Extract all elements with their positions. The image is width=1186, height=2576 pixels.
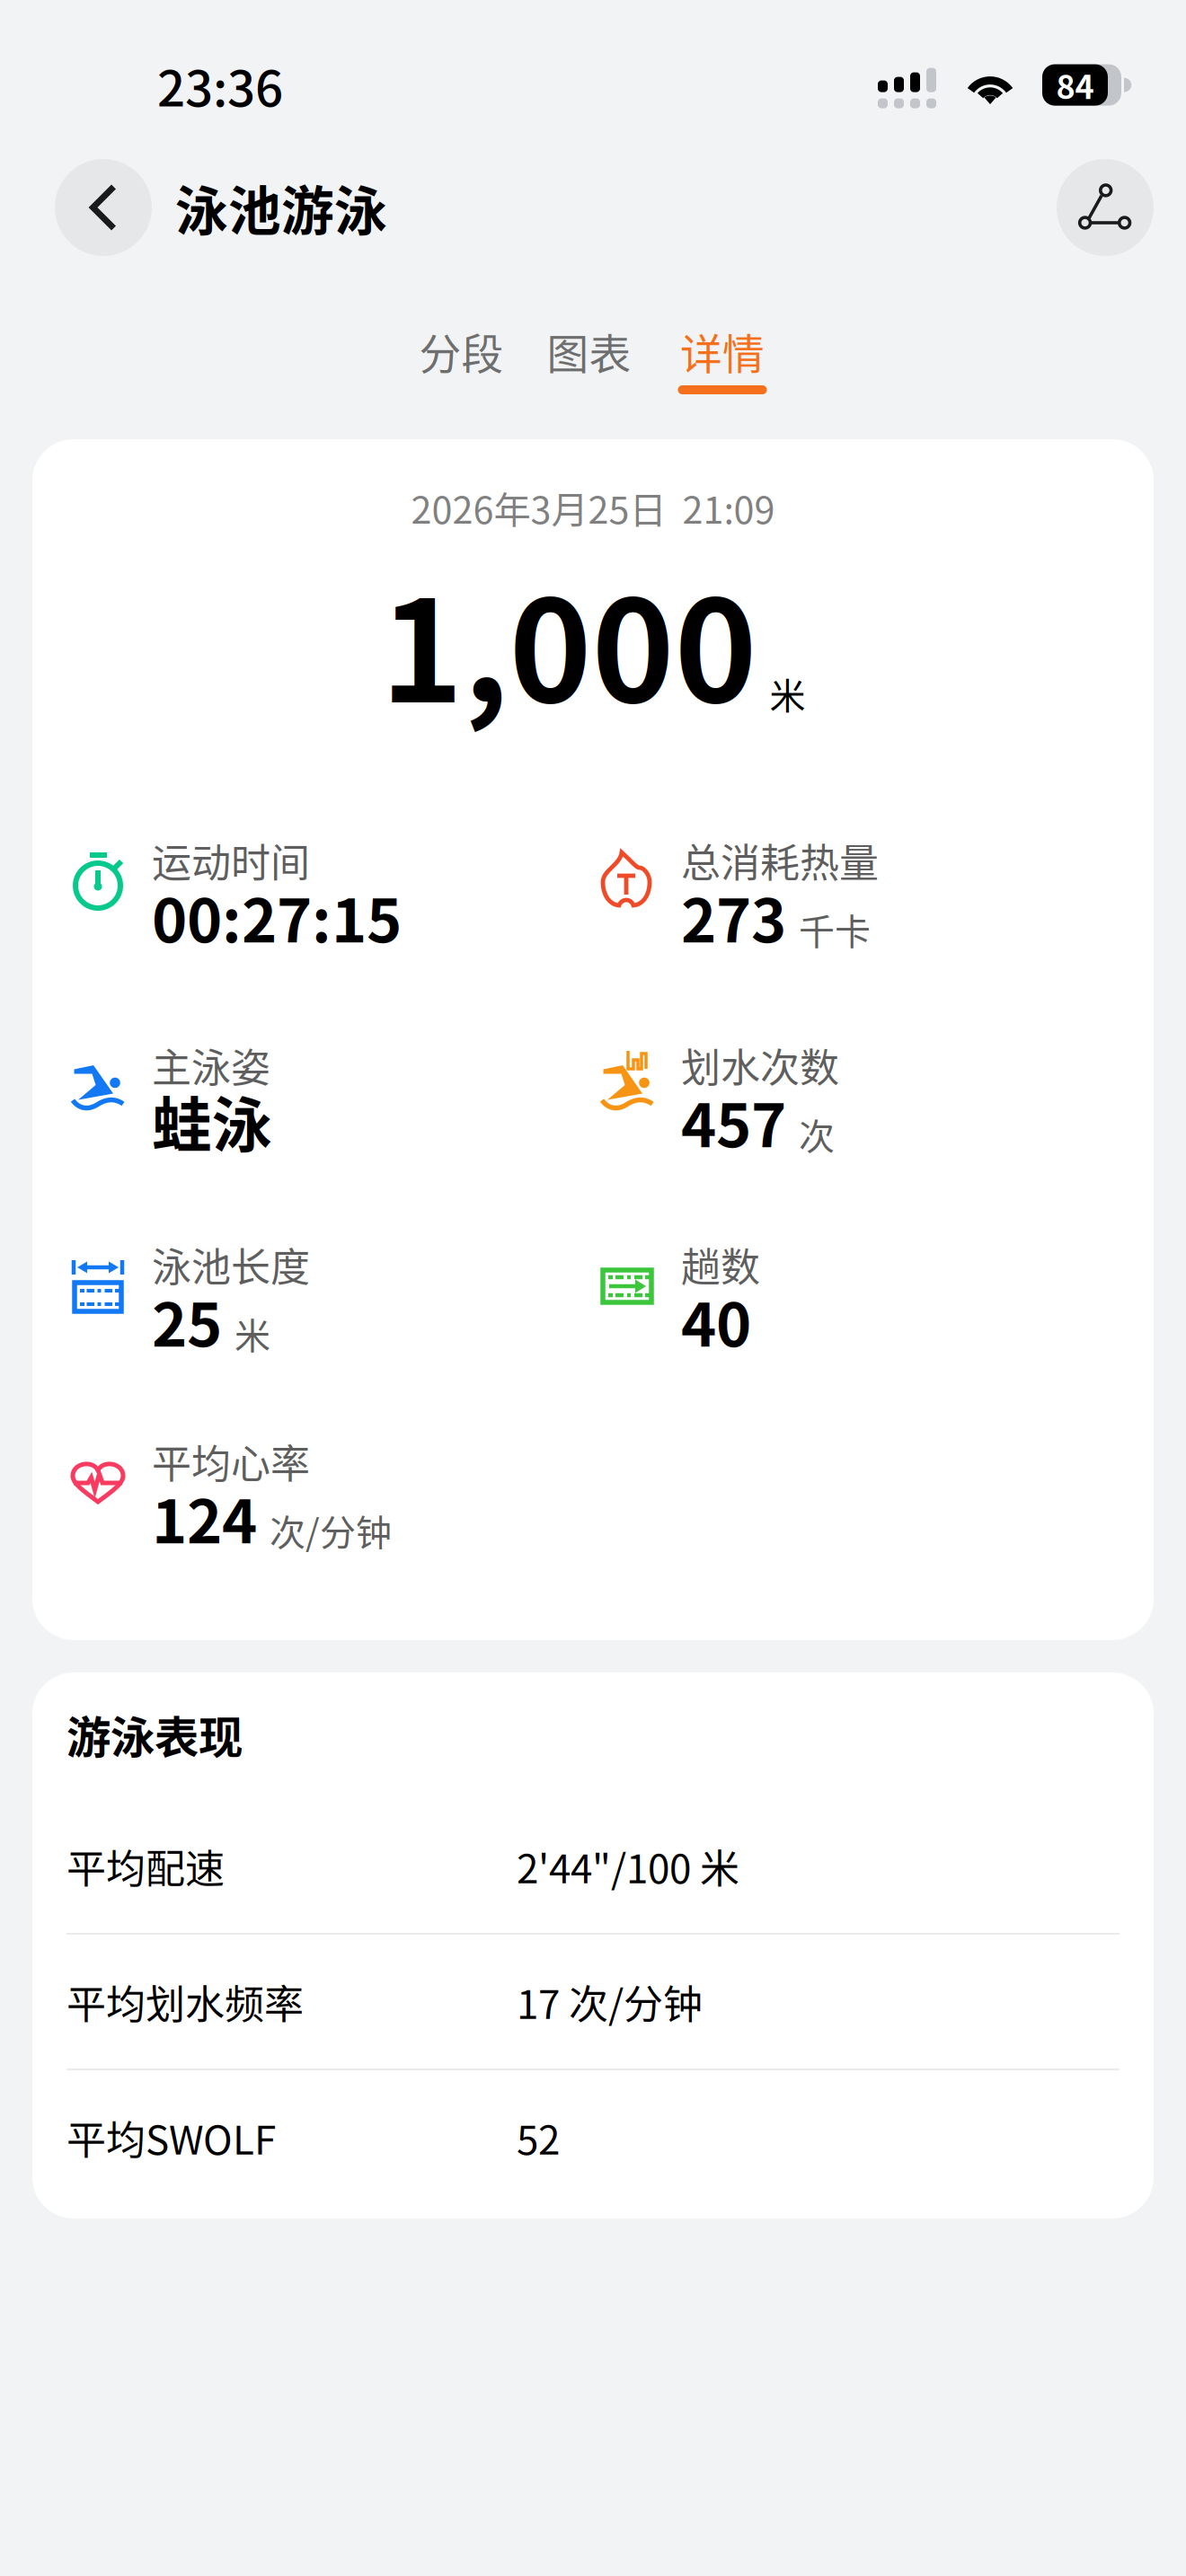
- staticText: 游泳表现: [66, 1702, 243, 1766]
- staticText: 蛙泳: [152, 1078, 272, 1164]
- staticText: 84: [1056, 62, 1094, 108]
- staticText: 平均心率: [152, 1433, 310, 1490]
- staticText: 米: [235, 1307, 270, 1359]
- staticText: 次/分钟: [270, 1504, 392, 1556]
- staticText: 泳池长度: [152, 1236, 310, 1293]
- staticText: 00:27:15: [152, 873, 402, 960]
- staticText: 趟数: [681, 1236, 760, 1293]
- staticText: 1,000: [381, 540, 757, 743]
- staticText: 17 次/分钟: [517, 1973, 703, 2030]
- staticText: 52: [517, 2109, 560, 2166]
- button[interactable]: 图表: [547, 328, 631, 375]
- staticText: 平均配速: [66, 1837, 225, 1895]
- staticText: 详情: [680, 321, 765, 382]
- staticText: 23:36: [157, 49, 283, 121]
- staticText: 平均划水频率: [66, 1973, 304, 2030]
- staticText: 273: [681, 873, 786, 960]
- staticText: 主泳姿: [152, 1037, 270, 1094]
- staticText: 泳池游泳: [175, 169, 387, 246]
- button[interactable]: Share: [1057, 159, 1154, 256]
- staticText: 平均SWOLF: [66, 2109, 276, 2166]
- staticText: 划水次数: [681, 1037, 839, 1094]
- button[interactable]: 详情: [678, 328, 767, 394]
- staticText: 次: [799, 1108, 835, 1160]
- staticText: 2'44"/100 米: [517, 1837, 739, 1895]
- staticText: 运动时间: [152, 832, 310, 889]
- button[interactable]: Back: [55, 159, 152, 256]
- staticText: 图表: [547, 321, 631, 382]
- staticText: 总消耗热量: [681, 832, 879, 889]
- staticText: 124: [152, 1474, 257, 1561]
- staticText: 分段: [419, 321, 504, 382]
- staticText: 25: [152, 1277, 222, 1364]
- button[interactable]: 分段: [419, 328, 504, 375]
- staticText: 米: [770, 667, 805, 719]
- staticText: 40: [681, 1277, 751, 1364]
- staticText: 千卡: [799, 903, 871, 955]
- staticText: 2026年3月25日 21:09: [411, 481, 775, 534]
- staticText: 457: [681, 1078, 786, 1164]
